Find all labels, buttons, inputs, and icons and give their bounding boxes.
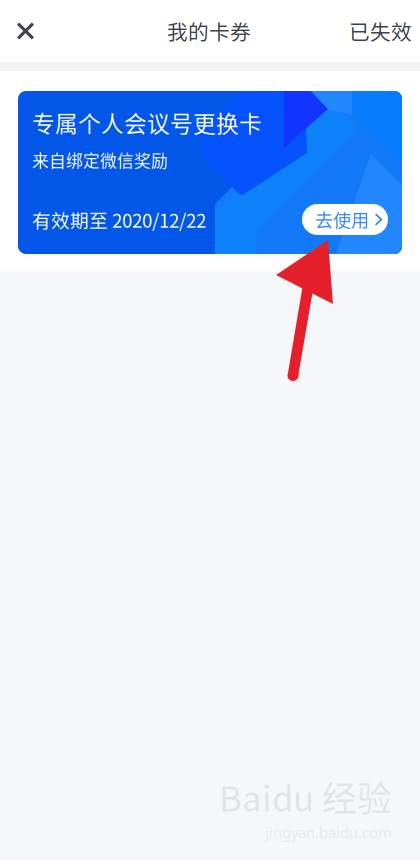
staticText: jingyan.baidu.com [265,822,392,842]
staticText: 专属个人会议号更换卡 [32,106,262,139]
button[interactable]: 已失效 [337,0,420,62]
staticText: 去使用 [315,206,369,233]
button[interactable]: Close [0,0,52,62]
staticText: 来自绑定微信奖励 [32,148,168,172]
button[interactable]: 去使用 [302,204,388,235]
staticText: 有效期至 2020/12/22 [32,206,206,233]
staticText: Baidu 经验 [219,771,392,821]
staticText: 已失效 [349,16,412,46]
staticText: 我的卡券 [167,16,251,46]
